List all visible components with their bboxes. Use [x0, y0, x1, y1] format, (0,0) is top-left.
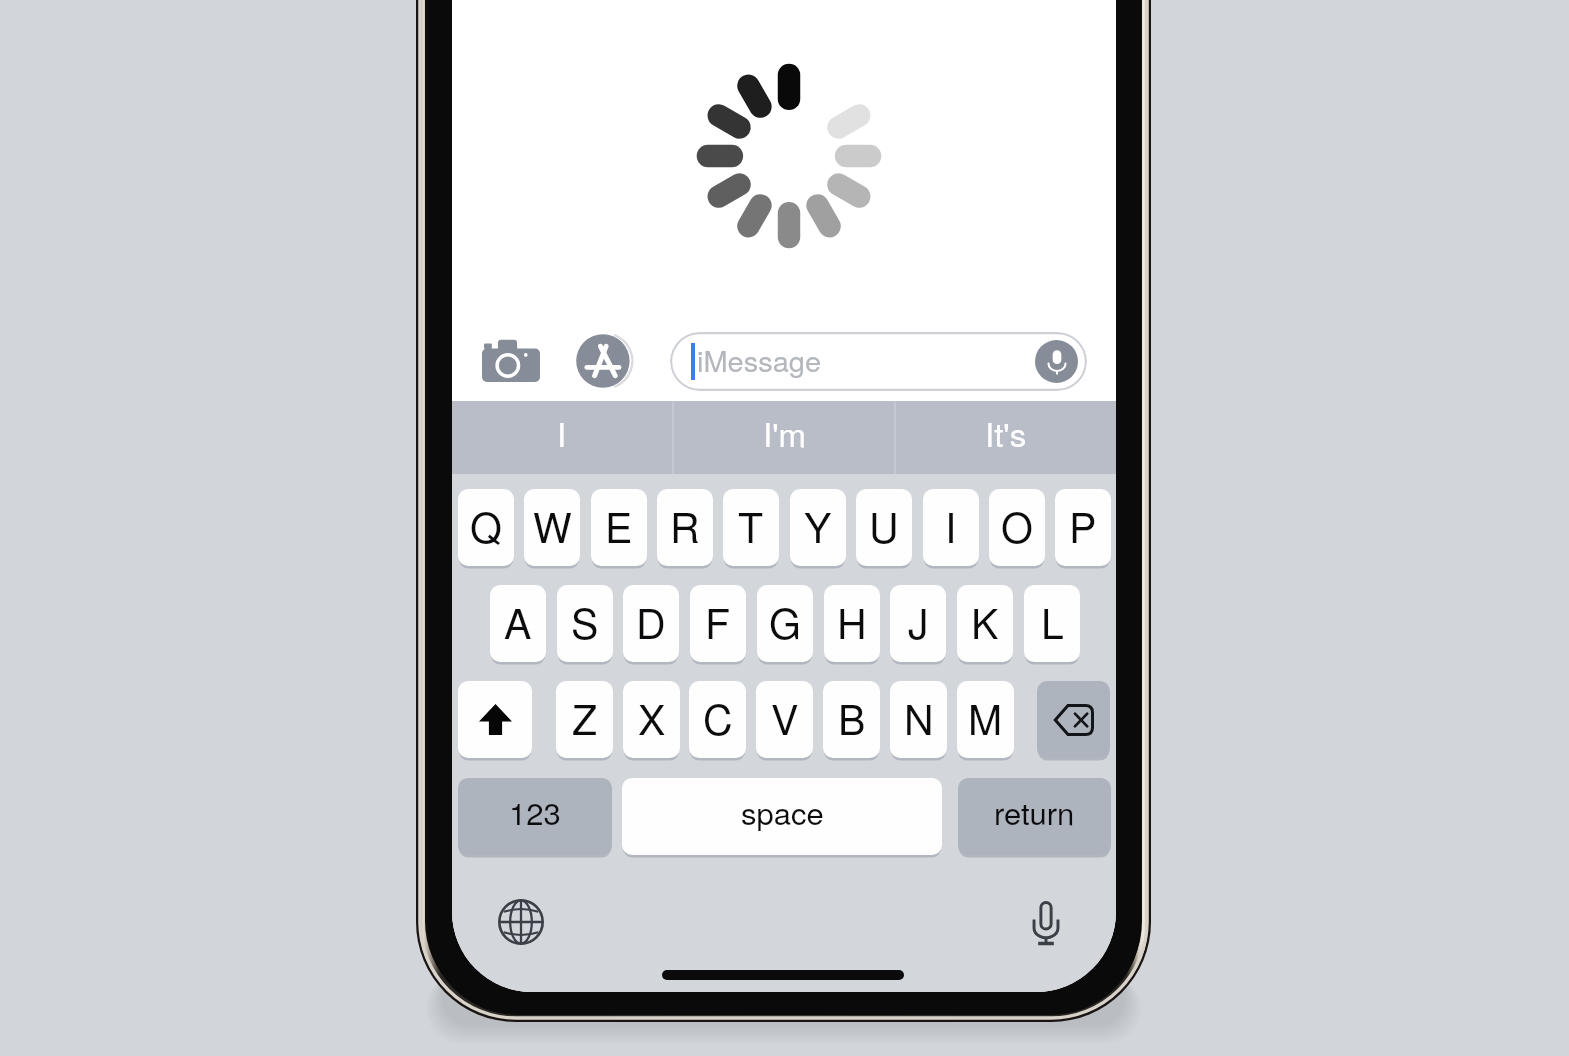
- button[interactable]: Y: [790, 489, 846, 566]
- button[interactable]: Q: [458, 489, 514, 566]
- button[interactable]: S: [557, 585, 613, 662]
- staticText: 123: [509, 789, 561, 833]
- staticText: N: [904, 688, 934, 747]
- button[interactable]: I: [923, 489, 979, 566]
- button[interactable]: It's: [896, 401, 1116, 474]
- button[interactable]: E: [591, 489, 647, 566]
- staticText: O: [1001, 496, 1033, 555]
- staticText: G: [769, 592, 801, 651]
- staticText: T: [738, 496, 764, 555]
- button[interactable]: R: [657, 489, 713, 566]
- staticText: K: [971, 592, 999, 651]
- button[interactable]: I: [452, 401, 672, 474]
- staticText: B: [838, 688, 866, 747]
- button[interactable]: X: [623, 681, 680, 758]
- button[interactable]: L: [1024, 585, 1080, 662]
- button[interactable]: N: [890, 681, 947, 758]
- button[interactable]: G: [757, 585, 813, 662]
- staticText: H: [837, 592, 867, 651]
- button[interactable]: B: [823, 681, 880, 758]
- staticText: iMessage: [697, 339, 822, 381]
- staticText: S: [571, 592, 599, 651]
- button[interactable]: Apps: [573, 329, 637, 393]
- button[interactable]: iMessage: [670, 332, 1087, 391]
- staticText: A: [504, 592, 532, 651]
- button[interactable]: Camera: [478, 335, 544, 385]
- button[interactable]: O: [989, 489, 1045, 566]
- staticText: C: [703, 688, 733, 747]
- staticText: I: [945, 496, 957, 555]
- button[interactable]: Switch keyboard: [496, 897, 546, 947]
- button[interactable]: M: [957, 681, 1014, 758]
- staticText: It's: [985, 409, 1027, 456]
- button[interactable]: Dictation: [1019, 896, 1073, 950]
- staticText: P: [1069, 496, 1097, 555]
- staticText: L: [1041, 592, 1064, 651]
- button[interactable]: A: [490, 585, 546, 662]
- staticText: U: [869, 496, 899, 555]
- button[interactable]: Backspace: [1037, 681, 1110, 758]
- staticText: V: [771, 688, 799, 747]
- staticText: R: [670, 496, 700, 555]
- staticText: X: [638, 688, 666, 747]
- button[interactable]: Shift: [458, 681, 532, 758]
- button[interactable]: D: [623, 585, 679, 662]
- button[interactable]: U: [856, 489, 912, 566]
- button[interactable]: F: [690, 585, 746, 662]
- button[interactable]: K: [957, 585, 1013, 662]
- staticText: F: [705, 592, 731, 651]
- staticText: D: [636, 592, 666, 651]
- staticText: Y: [804, 496, 832, 555]
- staticText: E: [605, 496, 633, 555]
- button[interactable]: I'm: [674, 401, 894, 474]
- staticText: I'm: [763, 409, 806, 456]
- button[interactable]: P: [1055, 489, 1111, 566]
- button[interactable]: 123: [458, 778, 612, 855]
- button[interactable]: Z: [556, 681, 613, 758]
- button[interactable]: C: [689, 681, 746, 758]
- staticText: Z: [572, 688, 598, 747]
- button[interactable]: W: [524, 489, 580, 566]
- button[interactable]: return: [958, 778, 1111, 855]
- staticText: W: [533, 496, 572, 555]
- button[interactable]: space: [622, 778, 942, 855]
- button[interactable]: V: [756, 681, 813, 758]
- button[interactable]: Dictate: [1035, 340, 1078, 383]
- button[interactable]: J: [890, 585, 946, 662]
- staticText: J: [908, 592, 929, 651]
- staticText: return: [994, 789, 1075, 833]
- button[interactable]: T: [723, 489, 779, 566]
- staticText: space: [741, 789, 824, 833]
- staticText: M: [968, 688, 1003, 747]
- staticText: I: [557, 409, 567, 456]
- staticText: Q: [470, 496, 502, 555]
- button[interactable]: H: [824, 585, 880, 662]
